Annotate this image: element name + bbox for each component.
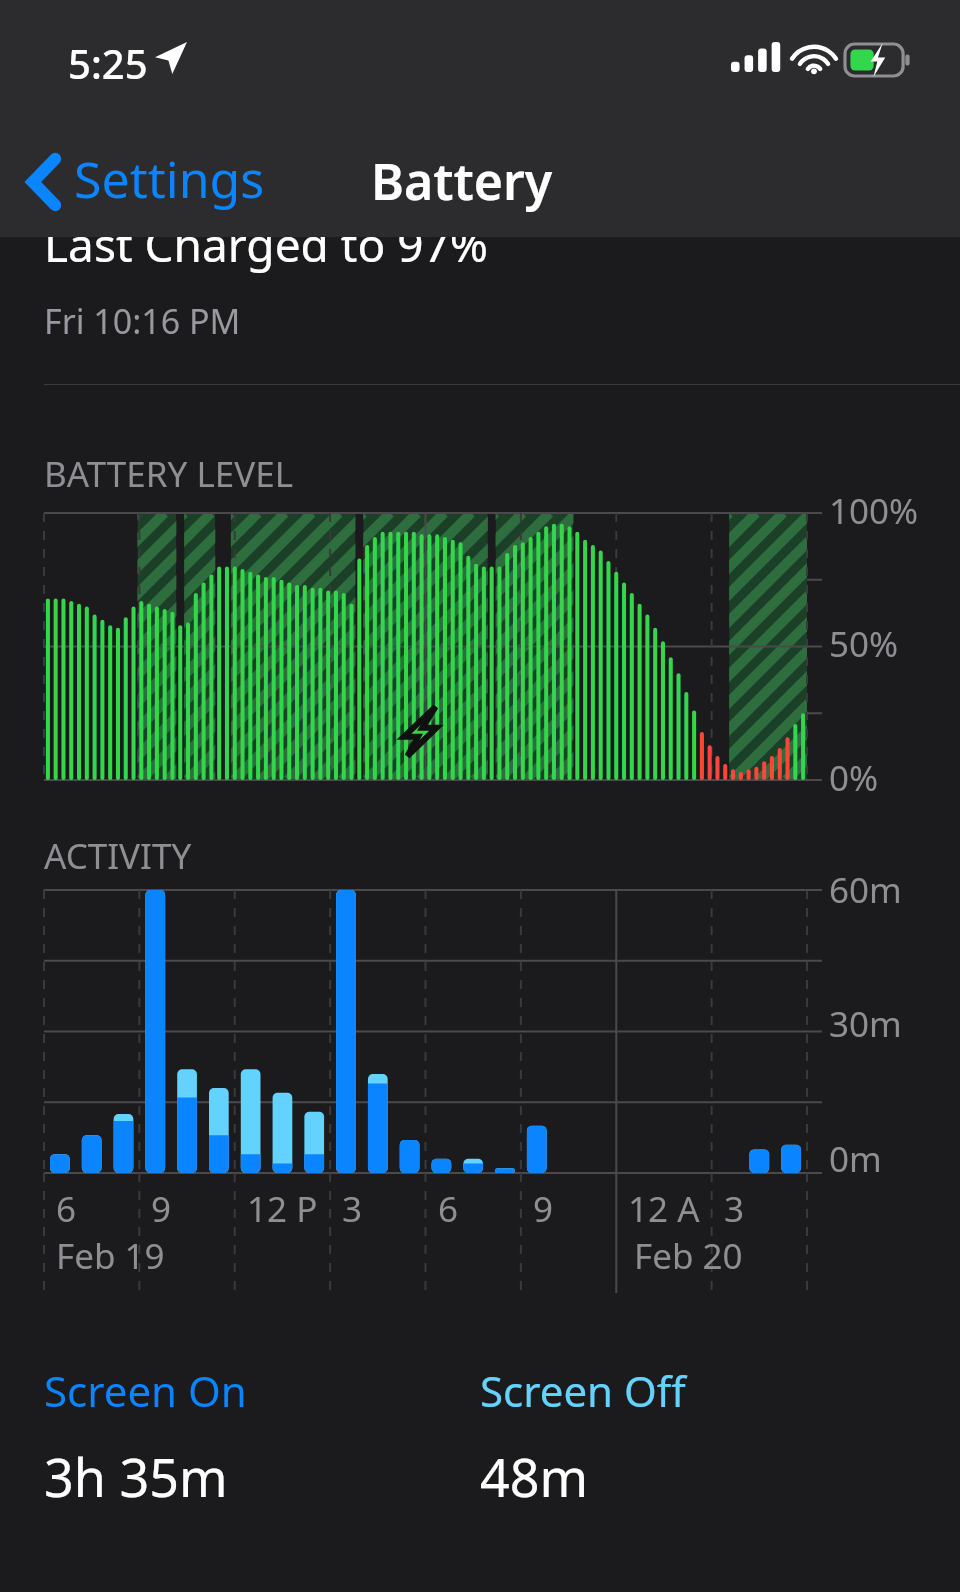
staticText: 9 — [533, 1185, 554, 1233]
staticText: 60m — [829, 866, 902, 914]
staticText: 3 — [342, 1185, 363, 1233]
staticText: 5:25 — [68, 36, 148, 90]
staticText: ACTIVITY — [44, 832, 192, 880]
staticText: 0m — [829, 1135, 882, 1183]
staticText: 6 — [56, 1185, 77, 1233]
staticText: Fri 10:16 PM — [44, 298, 241, 344]
staticText: Feb 19 — [56, 1232, 165, 1280]
staticText: Feb 20 — [634, 1232, 743, 1280]
staticText: Screen Off — [480, 1362, 686, 1419]
staticText: 100% — [829, 487, 919, 535]
staticText: Settings — [74, 145, 265, 213]
staticText: BATTERY LEVEL — [44, 450, 294, 498]
staticText: 6 — [438, 1185, 459, 1233]
button[interactable]: Back to Settings — [24, 127, 265, 237]
staticText: 3h 35m — [44, 1441, 228, 1512]
button[interactable]: Screen On — [44, 1362, 480, 1512]
staticText: 30m — [829, 1000, 902, 1048]
staticText: 12 A — [628, 1185, 700, 1233]
staticText: 12 P — [247, 1185, 318, 1233]
staticText: Screen On — [44, 1362, 247, 1419]
staticText: 9 — [151, 1185, 172, 1233]
staticText: 48m — [480, 1441, 589, 1512]
staticText: Battery — [371, 147, 553, 215]
button[interactable]: Screen Off — [480, 1362, 900, 1512]
staticText: Last Charged to 97% — [44, 213, 489, 276]
staticText: 3 — [724, 1185, 745, 1233]
staticText: 50% — [829, 620, 899, 668]
staticText: 0% — [829, 754, 879, 802]
